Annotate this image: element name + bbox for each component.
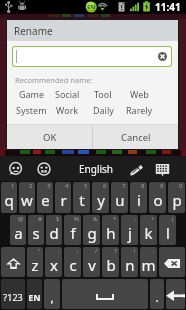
staticText: 9 (160, 182, 164, 190)
staticText: m (141, 255, 156, 275)
staticText: @ (18, 215, 24, 223)
staticText: z (31, 255, 39, 275)
button[interactable]: 9 (149, 182, 166, 213)
button[interactable]: - (121, 215, 138, 245)
staticText: EN (28, 291, 41, 303)
staticText: 3 (47, 182, 51, 190)
button[interactable]: Daily (85, 102, 121, 118)
staticText: 11:41 (155, 0, 181, 14)
button[interactable]: / (83, 247, 100, 277)
staticText: / (95, 247, 98, 255)
button[interactable]: Space (62, 279, 148, 309)
button[interactable]: 6 (92, 182, 109, 213)
staticText: p (172, 190, 182, 210)
button[interactable]: Tool (85, 86, 121, 102)
button[interactable]: ? (102, 247, 119, 277)
staticText: 5 (84, 182, 88, 190)
staticText: b (106, 255, 116, 275)
staticText: . (155, 289, 159, 305)
button[interactable]: Web (121, 86, 157, 102)
button[interactable]: Clear text (158, 52, 167, 61)
staticText: Work (56, 104, 79, 116)
button[interactable]: 0 (168, 182, 185, 213)
staticText: l (166, 223, 170, 243)
button[interactable]: + (140, 215, 157, 245)
button[interactable]: $ (46, 215, 62, 245)
button[interactable]: Work (49, 102, 85, 118)
staticText: 2 (29, 182, 33, 190)
button[interactable]: Shift (1, 247, 25, 277)
button[interactable]: , (44, 279, 60, 309)
other: Shift (6, 258, 21, 269)
button[interactable]: 7 (111, 182, 128, 213)
staticText: e (41, 190, 50, 210)
staticText: Rarely (126, 104, 153, 116)
button[interactable]: 8 (130, 182, 147, 213)
button[interactable]: ( (159, 215, 176, 245)
button[interactable]: OK (7, 125, 92, 149)
button[interactable]: ?123 (1, 279, 25, 309)
staticText: a (14, 223, 23, 243)
button[interactable]: & (83, 215, 100, 245)
button[interactable]: Handwriting (126, 160, 144, 178)
button[interactable]: Keyboard layout (153, 160, 171, 178)
button[interactable]: 2 (19, 182, 35, 213)
staticText: * (113, 215, 117, 223)
button[interactable]: # (28, 215, 44, 245)
button[interactable]: : (45, 247, 62, 277)
button[interactable]: EN (27, 279, 42, 309)
button[interactable]: . (150, 279, 164, 309)
staticText: Recommended name: (15, 75, 93, 85)
staticText: 4 (65, 182, 69, 190)
button[interactable]: % (64, 215, 81, 245)
button[interactable]: 3 (37, 182, 53, 213)
button[interactable]: 1 (1, 182, 17, 213)
button[interactable]: * (102, 215, 119, 245)
staticText: % (74, 215, 79, 223)
staticText: 6 (103, 182, 107, 190)
staticText: u (115, 190, 125, 210)
button[interactable]: 5 (73, 182, 90, 213)
staticText: s (32, 223, 40, 243)
button[interactable]: Enter (166, 279, 185, 309)
staticText: k (144, 223, 153, 243)
other: Enter (166, 289, 185, 302)
staticText: Tool (94, 88, 112, 100)
staticText: q (4, 190, 14, 210)
staticText: + (151, 215, 155, 223)
staticText: i (137, 190, 141, 210)
button[interactable]: Game (14, 86, 49, 102)
button[interactable]: ; (64, 247, 81, 277)
staticText: & (93, 215, 98, 223)
staticText: o (153, 190, 163, 210)
button[interactable]: Social (49, 86, 85, 102)
staticText: Daily (93, 104, 114, 116)
staticText: x (50, 255, 58, 275)
staticText: Rename (14, 24, 53, 38)
staticText: j (128, 223, 132, 243)
button[interactable]: Emoticons (7, 161, 23, 177)
button[interactable]: ! (121, 247, 138, 277)
staticText: t (79, 190, 85, 210)
staticText: ; (77, 247, 79, 255)
staticText: ( (172, 215, 174, 223)
staticText: OK (43, 131, 57, 144)
staticText: English (79, 162, 114, 176)
button[interactable]: , (140, 247, 157, 277)
button[interactable]: Delete (159, 247, 185, 277)
staticText: h (106, 223, 116, 243)
button[interactable]: 4 (55, 182, 71, 213)
button[interactable]: Rarely (121, 102, 157, 118)
staticText: Social (55, 88, 80, 100)
staticText: 7 (122, 182, 126, 190)
staticText: n (125, 255, 135, 275)
button[interactable]: " (27, 247, 43, 277)
staticText: # (38, 215, 42, 223)
button[interactable]: Cancel (93, 125, 178, 149)
staticText: ? (114, 247, 117, 255)
staticText: System (16, 104, 47, 116)
button[interactable]: System (14, 102, 49, 118)
button[interactable]: Clear text (13, 47, 171, 66)
button[interactable]: Emoji keyboard (36, 161, 52, 177)
button[interactable]: @ (10, 215, 26, 245)
